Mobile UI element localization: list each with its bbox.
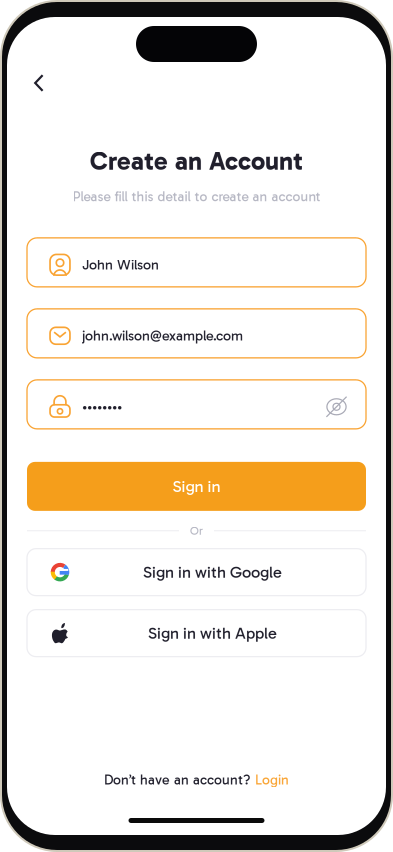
button[interactable]: Don’t have an account?	[7, 771, 386, 788]
button[interactable]: John Wilson	[27, 238, 366, 287]
staticText: Sign in with Google	[143, 562, 282, 582]
button[interactable]: ••••••••	[27, 380, 366, 429]
staticText: john.wilson@example.com	[82, 327, 243, 344]
staticText: Sign in	[172, 476, 220, 496]
staticText: Create an Account	[90, 146, 303, 176]
staticText: Or	[190, 524, 203, 538]
button[interactable]: Sign in with Google	[27, 549, 366, 596]
button[interactable]: john.wilson@example.com	[27, 309, 366, 358]
staticText: Sign in with Apple	[148, 623, 277, 643]
staticText: Login	[255, 771, 289, 788]
staticText: ••••••••	[82, 398, 122, 415]
staticText: Don’t have an account?	[104, 771, 250, 788]
staticText: Please fill this detail to create an acc…	[72, 188, 320, 205]
button[interactable]: Sign in with Apple	[27, 610, 366, 657]
button[interactable]: Back	[7, 67, 78, 99]
staticText: John Wilson	[82, 256, 159, 273]
button[interactable]: Sign in	[27, 462, 366, 511]
